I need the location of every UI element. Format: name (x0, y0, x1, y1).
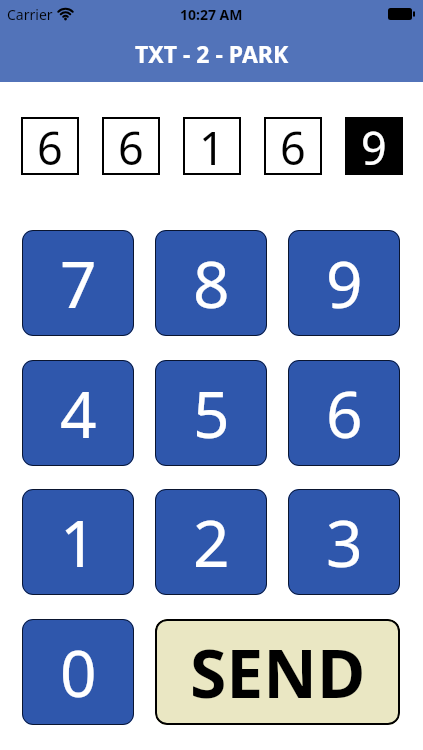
staticText: 6 (118, 117, 144, 175)
button[interactable]: SEND (155, 619, 400, 725)
button[interactable]: 7 (22, 230, 134, 336)
staticText: 5 (193, 370, 230, 457)
staticText: 3 (326, 499, 363, 586)
staticText: 7 (60, 240, 97, 327)
staticText: 0 (60, 629, 97, 716)
staticText: Carrier (7, 5, 53, 24)
staticText: 2 (193, 499, 230, 586)
button[interactable]: 1 (22, 489, 134, 595)
button[interactable]: 2 (155, 489, 267, 595)
staticText: 9 (361, 117, 387, 175)
staticText: 1 (199, 117, 225, 175)
staticText: TXT - 2 - PARK (135, 38, 289, 69)
staticText: 1 (60, 499, 97, 586)
staticText: 6 (37, 117, 63, 175)
staticText: 6 (326, 370, 363, 457)
button[interactable]: 4 (22, 360, 134, 466)
staticText: 9 (326, 240, 363, 327)
staticText: SEND (190, 627, 366, 717)
staticText: 8 (193, 240, 230, 327)
button[interactable]: 3 (288, 489, 400, 595)
button[interactable]: 5 (155, 360, 267, 466)
button[interactable]: 9 (288, 230, 400, 336)
staticText: 6 (280, 117, 306, 175)
button[interactable]: 6 (288, 360, 400, 466)
staticText: 4 (60, 370, 97, 457)
button[interactable]: 8 (155, 230, 267, 336)
staticText: 10:27 AM (180, 5, 243, 24)
button[interactable]: 0 (22, 619, 134, 725)
